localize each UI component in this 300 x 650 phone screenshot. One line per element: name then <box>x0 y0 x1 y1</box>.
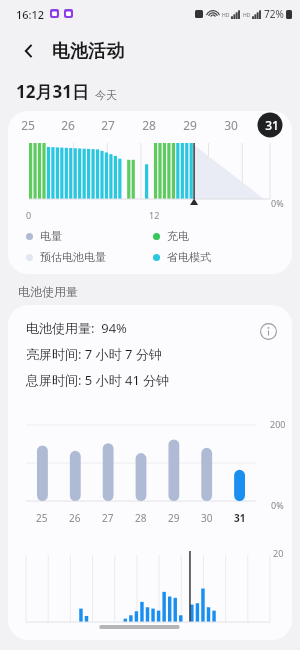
staticText: 电池使用量 <box>18 284 78 299</box>
staticText: 省电模式 <box>167 250 211 264</box>
staticText: 27 <box>101 117 115 133</box>
staticText: 电池使用量: 94% <box>26 319 127 337</box>
button[interactable]: Back <box>14 36 44 66</box>
staticText: 200 <box>270 418 286 430</box>
staticText: 29 <box>183 117 197 133</box>
staticText: 亮屏时间: 7 小时 7 分钟 <box>26 345 162 363</box>
button[interactable]: 25 <box>8 111 292 274</box>
staticText: HD <box>222 12 230 19</box>
staticText: 26 <box>61 117 75 133</box>
staticText: 预估电池电量 <box>40 250 106 264</box>
staticText: 25 <box>36 511 48 525</box>
staticText: 31 <box>234 511 246 525</box>
staticText: 28 <box>142 117 156 133</box>
staticText: 电量 <box>40 229 62 243</box>
staticText: 29 <box>168 511 180 525</box>
staticText: 30 <box>224 117 238 133</box>
button[interactable]: 电池使用量: 94% <box>8 305 292 640</box>
staticText: 12 <box>149 209 160 221</box>
staticText: 25 <box>21 117 35 133</box>
staticText: 0 <box>26 209 32 221</box>
staticText: 72% <box>264 7 284 21</box>
staticText: 20 <box>273 547 284 559</box>
button[interactable]: Info <box>256 319 280 343</box>
staticText: 27 <box>102 511 114 525</box>
staticText: HD <box>243 12 251 19</box>
staticText: 充电 <box>167 229 189 243</box>
staticText: 电池活动 <box>52 40 124 63</box>
staticText: 28 <box>135 511 147 525</box>
staticText: 26 <box>69 511 81 525</box>
staticText: 30 <box>201 511 213 525</box>
staticText: 16:12 <box>16 7 45 22</box>
staticText: 今天 <box>95 88 117 102</box>
staticText: 0% <box>271 499 284 511</box>
staticText: 息屏时间: 5 小时 41 分钟 <box>26 371 170 389</box>
staticText: 0% <box>271 197 284 209</box>
staticText: 31 <box>265 117 279 133</box>
staticText: 12月31日 <box>16 80 89 103</box>
